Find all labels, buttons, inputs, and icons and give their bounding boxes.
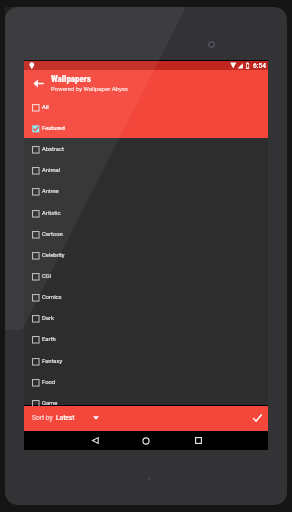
button[interactable]: Earth <box>24 329 268 350</box>
button[interactable]: Celebrity <box>24 245 268 266</box>
button[interactable]: Back <box>82 431 108 450</box>
staticText: Anime <box>42 188 59 195</box>
button[interactable]: Featured <box>24 118 268 139</box>
staticText: Comics <box>42 294 62 301</box>
staticText: Game <box>42 400 58 407</box>
button[interactable]: Navigate up <box>28 73 48 93</box>
button[interactable]: Sort by <box>28 406 103 431</box>
staticText: 6:54 <box>253 62 266 70</box>
staticText: Artistic <box>42 210 61 217</box>
staticText: Fantasy <box>42 358 63 365</box>
staticText: Dark <box>42 315 54 322</box>
button[interactable]: Anime <box>24 181 268 202</box>
staticText: Food <box>42 379 56 386</box>
button[interactable]: Home <box>133 431 159 450</box>
button[interactable]: Game <box>24 393 268 414</box>
button[interactable]: All <box>24 97 268 118</box>
button[interactable]: Animal <box>24 160 268 181</box>
staticText: Cartoon <box>42 231 63 238</box>
button[interactable]: Cartoon <box>24 224 268 245</box>
button[interactable]: CGI <box>24 266 268 287</box>
staticText: Celebrity <box>42 252 65 259</box>
staticText: Animal <box>42 167 61 174</box>
staticText: Abstract <box>42 146 64 153</box>
button[interactable]: Fantasy <box>24 351 268 372</box>
staticText: Featured <box>42 125 65 132</box>
button[interactable]: Apply filter <box>246 407 268 429</box>
staticText: Latest <box>56 414 75 422</box>
staticText: CGI <box>42 273 52 280</box>
button[interactable]: Dark <box>24 308 268 329</box>
button[interactable]: Artistic <box>24 203 268 224</box>
staticText: All <box>42 104 49 111</box>
button[interactable]: Recent apps <box>185 431 211 450</box>
button[interactable]: Food <box>24 372 268 393</box>
button[interactable]: Abstract <box>24 139 268 160</box>
staticText: Sort by <box>32 414 53 422</box>
staticText: Earth <box>42 336 56 343</box>
button[interactable]: Comics <box>24 287 268 308</box>
staticText: Powered by Wallpaper Abyss <box>51 85 128 92</box>
staticText: Wallpapers <box>51 74 91 85</box>
